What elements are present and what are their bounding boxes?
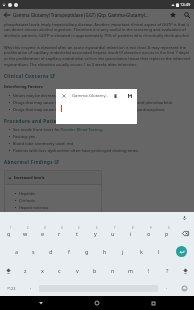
button[interactable]: l [150, 242, 168, 261]
staticText: c [58, 267, 61, 274]
button[interactable]: ? [158, 261, 176, 280]
staticText: 5 [78, 226, 80, 230]
staticText: Procedure and Patient Care [4, 118, 76, 124]
staticText: Cholestasis [19, 226, 40, 231]
staticText: ? [166, 267, 169, 274]
button[interactable]: Voice input [179, 212, 190, 223]
staticText: Drugs that may cause decreased levels in… [13, 107, 166, 112]
button[interactable]: Shift [176, 261, 194, 280]
staticText: u [111, 230, 115, 237]
button[interactable]: Save [122, 89, 137, 102]
button[interactable]: Back [26, 296, 56, 310]
staticText: v [76, 267, 79, 274]
button[interactable]: 4 [51, 223, 68, 242]
staticText: Clinical Concerns [4, 73, 49, 79]
button[interactable]: Delete [109, 89, 122, 102]
staticText: 4 [61, 226, 63, 230]
button[interactable]: 5 [68, 223, 86, 242]
staticText: Patients with liver dysfunction often ha… [13, 148, 139, 153]
button[interactable]: j [114, 242, 132, 261]
button[interactable]: 9 [140, 223, 158, 242]
staticText: Hepatic necrosis [19, 205, 49, 210]
button[interactable]: f [60, 242, 78, 261]
staticText: p [165, 230, 169, 237]
button[interactable]: Search [180, 9, 194, 21]
staticText: , [30, 284, 32, 290]
staticText: q [7, 230, 11, 237]
staticText: n [111, 267, 115, 274]
button[interactable]: Increased levels [8, 175, 98, 180]
staticText: 2 [27, 226, 29, 230]
button[interactable]: m [122, 261, 140, 280]
button[interactable]: Recents [138, 296, 168, 310]
staticText: 12:49 [180, 2, 191, 7]
button[interactable]: a [8, 242, 25, 261]
button[interactable]: n [104, 261, 122, 280]
staticText: h [103, 248, 107, 255]
button[interactable]: x [34, 261, 51, 280]
button[interactable]: d [42, 242, 60, 261]
button[interactable]: s [25, 242, 42, 261]
staticText: b [93, 267, 97, 274]
staticText: Values may be decreased in late pregnanc… [13, 93, 95, 98]
staticText: Gamma Glutamyl Transpeptidase (GGT) (Gtp… [13, 12, 166, 18]
staticText: m [128, 267, 134, 274]
staticText: d [49, 248, 53, 255]
staticText: f [68, 248, 70, 255]
button[interactable]: Close [56, 89, 72, 102]
staticText: l [158, 248, 160, 255]
button[interactable]: Procedure and Patient Care [4, 118, 82, 124]
staticText: Gamma-Glutamy.. [72, 93, 109, 99]
button[interactable]: Shift [0, 261, 17, 280]
button[interactable]: 2 [17, 223, 34, 242]
staticText: w [23, 230, 28, 237]
staticText: a [15, 248, 19, 255]
staticText: See inside front cover for Routine Blood… [13, 127, 104, 132]
staticText: k [140, 248, 143, 255]
staticText: Hepatitis [19, 191, 35, 196]
staticText: i [130, 230, 132, 237]
button[interactable]: 3 [34, 223, 51, 242]
staticText: ! [148, 267, 150, 274]
staticText: Increased levels [14, 175, 45, 180]
staticText: Interfering Factors [4, 84, 43, 90]
button[interactable]: Space [39, 280, 158, 296]
button[interactable]: h [96, 242, 114, 261]
button[interactable]: 0 [158, 223, 176, 242]
button[interactable]: 7 [104, 223, 122, 242]
staticText: Why this enzyme is elevated after an acu… [4, 45, 190, 68]
button[interactable]: Abnormal Findings [4, 159, 59, 165]
staticText: o [147, 230, 151, 237]
staticText: t [76, 230, 78, 237]
staticText: 1 [10, 226, 12, 230]
button[interactable]: k [132, 242, 150, 261]
button[interactable]: b [86, 261, 104, 280]
button[interactable]: Home [82, 296, 112, 310]
staticText: Fasting: yes [13, 134, 35, 139]
button[interactable]: Enter [168, 242, 194, 261]
button[interactable]: 8 [122, 223, 140, 242]
button[interactable]: v [68, 261, 86, 280]
button[interactable]: ! [140, 261, 158, 280]
staticText: Abnormal Findings [4, 159, 53, 165]
button[interactable]: 1 [0, 223, 17, 242]
button[interactable]: Comma [22, 280, 39, 296]
button[interactable]: Backspace [176, 223, 194, 242]
staticText: 3 [44, 226, 46, 230]
button[interactable]: ?123 [0, 280, 22, 296]
button[interactable]: g [78, 242, 96, 261]
button[interactable]: c [51, 261, 68, 280]
staticText: Drugs that may cause increased levels in… [13, 100, 174, 105]
staticText: e [41, 230, 45, 237]
button[interactable]: Clinical Concerns [4, 73, 55, 79]
button[interactable]: Back [0, 9, 13, 21]
button[interactable]: 6 [86, 223, 104, 242]
button[interactable]: Emoji [175, 280, 194, 296]
button[interactable]: z [17, 261, 34, 280]
button[interactable]: Favorite [166, 9, 180, 21]
staticText: s [32, 248, 35, 255]
staticText: 7 [114, 226, 116, 230]
